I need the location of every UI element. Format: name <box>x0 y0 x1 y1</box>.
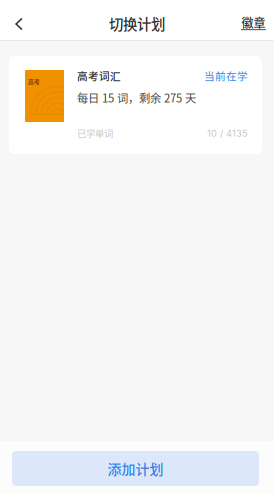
staticText: 添加计划 <box>107 458 163 479</box>
staticText: 10 / 4135 <box>207 128 248 139</box>
staticText: 当前在学 <box>204 68 248 83</box>
button[interactable]: 高考 <box>9 56 262 154</box>
button[interactable]: Back <box>0 9 38 39</box>
staticText: 徽章 <box>241 14 265 31</box>
staticText: 高考词汇 <box>77 68 121 83</box>
button[interactable]: 徽章 <box>233 8 274 38</box>
staticText: 高考 <box>28 77 40 86</box>
staticText: 切换计划 <box>109 13 165 34</box>
staticText: 每日 15 词，剩余 275 天 <box>77 89 196 106</box>
staticText: 已学单词 <box>77 126 113 140</box>
button[interactable]: 添加计划 <box>12 451 259 486</box>
